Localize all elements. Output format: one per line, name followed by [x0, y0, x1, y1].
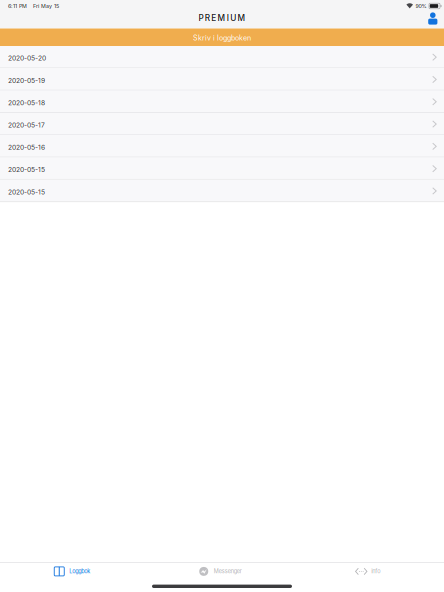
button[interactable]: Account [428, 12, 437, 25]
staticText: 2020-05-19 [8, 76, 45, 84]
staticText: 2020-05-17 [8, 121, 45, 129]
staticText: Fri May 15 [33, 3, 59, 9]
staticText: 2020-05-15 [8, 188, 45, 196]
button[interactable]: 2020-05-15 [0, 157, 444, 180]
button[interactable]: Messenger [148, 563, 296, 579]
button[interactable]: 2020-05-18 [0, 91, 444, 113]
staticText: info [371, 568, 380, 575]
button[interactable]: 2020-05-16 [0, 135, 444, 157]
button[interactable]: 2020-05-19 [0, 68, 444, 91]
button[interactable]: info [296, 563, 444, 579]
button[interactable]: 2020-05-17 [0, 113, 444, 135]
staticText: PREMIUM [198, 13, 246, 23]
button[interactable]: 2020-05-15 [0, 180, 444, 202]
staticText: Loggbok [69, 568, 90, 575]
staticText: 2020-05-20 [8, 54, 46, 62]
staticText: Skriv i loggboken [193, 34, 251, 42]
staticText: 2020-05-15 [8, 166, 45, 174]
staticText: Messenger [214, 568, 242, 575]
button[interactable]: 2020-05-20 [0, 46, 444, 68]
staticText: 2020-05-18 [8, 99, 45, 107]
button[interactable]: Loggbok [0, 563, 148, 579]
staticText: 6:11 PM [8, 3, 27, 9]
staticText: 2020-05-16 [8, 143, 45, 151]
staticText: 90% [415, 3, 426, 9]
button[interactable]: Skriv i loggboken [0, 28, 444, 46]
